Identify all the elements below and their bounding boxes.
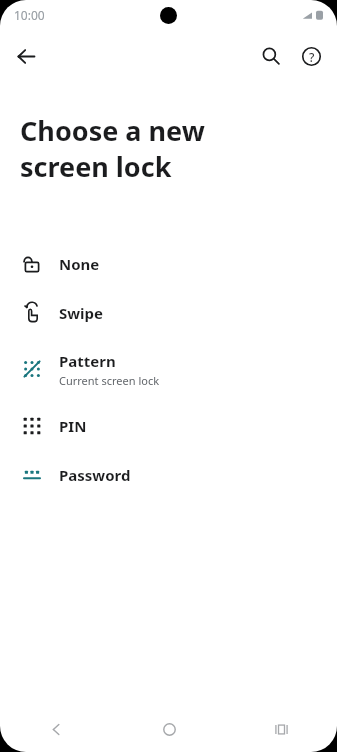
button[interactable]: Back [0,706,113,752]
staticText: Swipe [59,303,104,323]
button[interactable]: PIN [0,401,337,450]
button[interactable]: Recent apps [225,706,337,752]
button[interactable]: Search [251,36,291,76]
staticText: ? [309,49,315,65]
button[interactable]: Help [291,36,331,76]
staticText: Pattern [59,351,116,371]
button[interactable]: None [0,239,337,288]
staticText: PIN [59,416,87,436]
button[interactable]: Password [0,450,337,499]
button[interactable]: Pattern [0,337,337,401]
button[interactable]: Swipe [0,288,337,337]
button[interactable]: Back [6,36,46,76]
staticText: None [59,254,100,274]
staticText: Current screen lock [59,373,160,388]
staticText: Choose a new screen lock [20,112,205,185]
button[interactable]: Home [113,706,225,752]
staticText: 10:00 [14,7,45,23]
staticText: Password [59,465,131,485]
